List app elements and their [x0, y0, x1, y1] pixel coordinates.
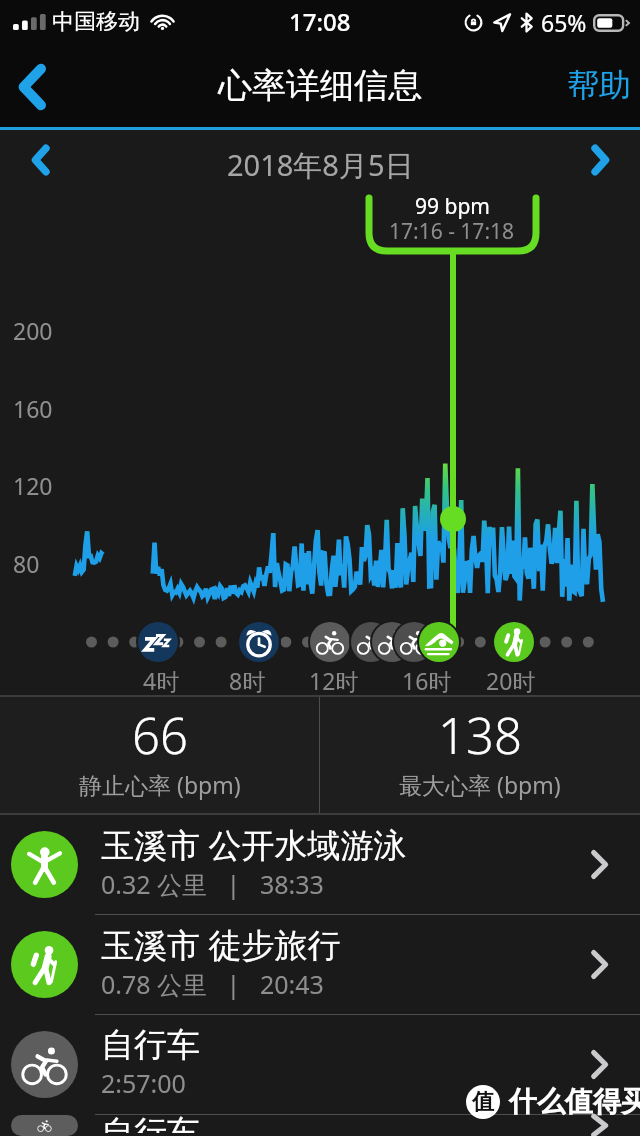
button[interactable]: 玉溪市 公开水域游泳	[0, 815, 640, 915]
staticText: 17:08	[289, 5, 351, 38]
staticText: 什么值得买	[509, 1084, 640, 1119]
staticText: 8时	[229, 665, 266, 696]
button[interactable]: Activity marker	[392, 620, 436, 664]
button[interactable]: 138	[320, 697, 640, 813]
button[interactable]: Next day	[560, 130, 640, 190]
staticText: 138	[438, 702, 522, 769]
staticText: 玉溪市 徒步旅行	[101, 922, 341, 967]
staticText: 静止心率 (bpm)	[79, 769, 241, 800]
staticText: 中国移动	[52, 8, 140, 36]
staticText: 0.78 公里 | 20:43	[101, 967, 324, 1001]
button[interactable]: 帮助	[530, 44, 640, 130]
staticText: 16时	[402, 665, 452, 696]
button[interactable]: Activity marker	[308, 620, 352, 664]
staticText: 0.32 公里 | 38:33	[101, 867, 324, 901]
button[interactable]: Back	[0, 44, 64, 130]
button[interactable]: Activity marker	[417, 620, 461, 664]
button[interactable]: Activity marker	[349, 620, 393, 664]
staticText: 17:16 - 17:18	[389, 217, 515, 246]
staticText: 4时	[143, 665, 180, 696]
button[interactable]: Activity marker	[136, 620, 180, 664]
button[interactable]: Activity marker	[492, 620, 536, 664]
staticText: 200	[13, 315, 53, 346]
staticText: 最大心率 (bpm)	[399, 769, 561, 800]
staticText: 心率详细信息	[218, 64, 422, 107]
button[interactable]: 自行车	[0, 1015, 640, 1115]
staticText: 65%	[541, 7, 587, 38]
staticText: 99 bpm	[415, 192, 490, 221]
button[interactable]: 66	[0, 697, 319, 813]
staticText: 自行车	[101, 1112, 200, 1133]
staticText: 80	[13, 548, 40, 579]
staticText: 自行车	[101, 1024, 200, 1066]
staticText: 2018年8月5日	[227, 145, 414, 185]
staticText: 20时	[486, 665, 536, 696]
button[interactable]: 自行车	[0, 1115, 640, 1136]
button[interactable]: Activity marker	[237, 620, 281, 664]
button[interactable]: 玉溪市 徒步旅行	[0, 915, 640, 1015]
staticText: 2:57:00	[101, 1066, 186, 1100]
button[interactable]: Activity marker	[370, 620, 414, 664]
staticText: 值	[472, 1088, 494, 1116]
staticText: 玉溪市 公开水域游泳	[101, 822, 407, 867]
staticText: 66	[132, 702, 188, 769]
button[interactable]: Previous day	[0, 130, 80, 190]
staticText: 160	[13, 393, 53, 424]
staticText: 帮助	[567, 65, 631, 105]
staticText: 120	[13, 470, 53, 501]
staticText: 12时	[309, 665, 359, 696]
